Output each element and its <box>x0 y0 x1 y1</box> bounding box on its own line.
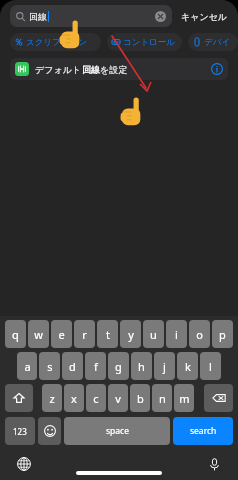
staticText: b <box>137 391 144 406</box>
staticText: p <box>219 327 226 342</box>
staticText: を設定 <box>100 64 128 75</box>
button[interactable]: Shift <box>5 384 33 412</box>
button[interactable]: Information <box>211 63 223 75</box>
staticText: キャンセル <box>181 11 228 22</box>
button[interactable]: d <box>62 352 83 380</box>
staticText: 回線 <box>82 64 100 75</box>
staticText: space <box>106 425 129 437</box>
staticText: d <box>69 359 76 374</box>
staticText: x <box>71 391 77 406</box>
button[interactable]: v <box>108 384 128 412</box>
button[interactable]: デバイ <box>188 33 238 51</box>
button[interactable]: Dictation <box>204 454 224 474</box>
button[interactable]: 回線 <box>10 5 172 27</box>
staticText: f <box>94 359 98 374</box>
button[interactable]: Delete <box>204 384 233 412</box>
button[interactable]: n <box>152 384 172 412</box>
button[interactable]: デフォルト <box>10 58 228 80</box>
staticText: m <box>179 391 190 406</box>
staticText: z <box>49 391 55 406</box>
button[interactable]: u <box>143 320 164 348</box>
staticText: s <box>47 359 53 374</box>
staticText: l <box>209 359 212 374</box>
button[interactable]: j <box>154 352 175 380</box>
button[interactable]: k <box>177 352 198 380</box>
staticText: a <box>24 359 31 374</box>
button[interactable]: w <box>28 320 49 348</box>
button[interactable]: s <box>39 352 60 380</box>
button[interactable]: r <box>74 320 95 348</box>
button[interactable]: g <box>108 352 129 380</box>
staticText: g <box>115 359 122 374</box>
staticText: 123 <box>13 426 27 437</box>
button[interactable]: p <box>212 320 233 348</box>
staticText: u <box>150 327 157 342</box>
button[interactable]: コントロール <box>107 33 182 51</box>
button[interactable]: キャンセル <box>179 7 230 26</box>
button[interactable]: o <box>189 320 210 348</box>
button[interactable]: c <box>86 384 106 412</box>
button[interactable]: e <box>51 320 72 348</box>
staticText: j <box>163 359 166 374</box>
staticText: n <box>159 391 166 406</box>
button[interactable]: Change keyboard language <box>14 454 34 474</box>
staticText: デバイ <box>204 37 231 48</box>
staticText: search <box>190 425 217 437</box>
button[interactable]: f <box>85 352 106 380</box>
staticText: w <box>34 327 43 342</box>
button[interactable]: i <box>166 320 187 348</box>
staticText: スクリプティング <box>26 37 94 48</box>
button[interactable]: search <box>173 417 233 445</box>
button[interactable]: Emoji <box>38 417 61 445</box>
button[interactable]: Clear text <box>155 11 166 22</box>
staticText: コントロール <box>123 37 175 48</box>
button[interactable]: x <box>64 384 84 412</box>
staticText: t <box>106 327 110 342</box>
button[interactable]: y <box>120 320 141 348</box>
staticText: v <box>115 391 121 406</box>
staticText: h <box>138 359 145 374</box>
staticText: c <box>93 391 99 406</box>
button[interactable]: z <box>42 384 62 412</box>
button[interactable]: l <box>200 352 221 380</box>
staticText: q <box>12 327 19 342</box>
staticText: y <box>128 327 134 342</box>
staticText: r <box>82 327 87 342</box>
staticText: k <box>185 359 191 374</box>
staticText: e <box>58 327 65 342</box>
button[interactable]: h <box>131 352 152 380</box>
staticText: o <box>196 327 203 342</box>
button[interactable]: t <box>97 320 118 348</box>
staticText: 回線 <box>29 11 47 22</box>
staticText: デフォルト <box>35 64 82 75</box>
button[interactable]: b <box>130 384 150 412</box>
button[interactable]: q <box>5 320 26 348</box>
button[interactable]: m <box>174 384 194 412</box>
staticText: i <box>175 327 178 342</box>
button[interactable]: a <box>17 352 37 380</box>
button[interactable]: スクリプティング <box>10 33 101 51</box>
button[interactable]: 123 <box>5 417 35 445</box>
button[interactable]: space <box>64 417 170 445</box>
